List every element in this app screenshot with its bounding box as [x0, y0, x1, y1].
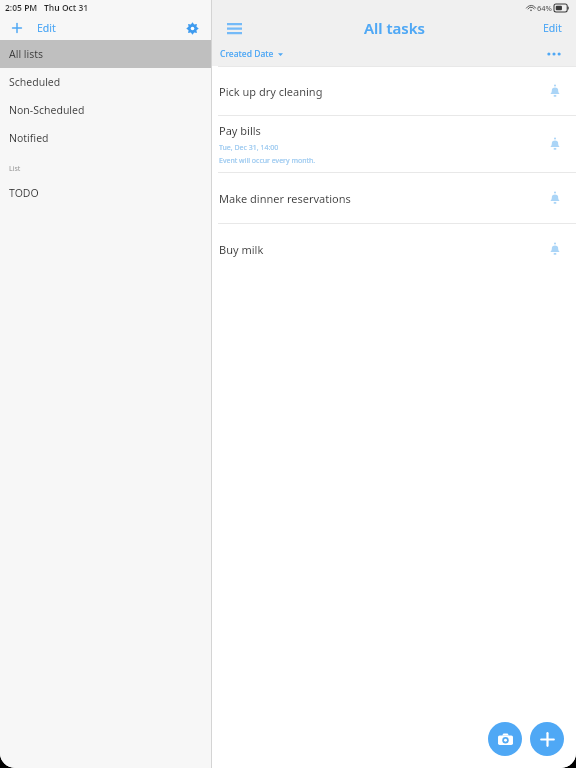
staticText: Scheduled	[9, 75, 61, 89]
staticText: TODO	[9, 186, 39, 200]
staticText: Notified	[9, 131, 49, 145]
button[interactable]: Scheduled	[0, 68, 211, 96]
staticText: 64%	[537, 3, 552, 13]
button[interactable]: More options	[543, 43, 565, 65]
button[interactable]: Take photo	[488, 722, 522, 756]
button[interactable]: Created Date	[218, 44, 285, 64]
button[interactable]: Settings	[181, 17, 203, 39]
button[interactable]: Pay bills	[212, 116, 576, 172]
staticText: Make dinner reservations	[219, 191, 351, 206]
staticText: Buy milk	[219, 242, 264, 257]
button[interactable]: Add task	[530, 722, 564, 756]
button[interactable]: Reminder	[543, 186, 567, 210]
staticText: Tue, Dec 31, 14:00	[219, 143, 279, 153]
staticText: Thu Oct 31	[44, 2, 89, 14]
button[interactable]: Reminder	[543, 79, 567, 103]
staticText: Pay bills	[219, 123, 261, 138]
staticText: Created Date	[220, 48, 274, 60]
button[interactable]: Edit	[34, 17, 59, 39]
button[interactable]: TODO	[0, 179, 211, 207]
staticText: All tasks	[364, 18, 425, 38]
button[interactable]: Reminder	[543, 237, 567, 261]
button[interactable]: Reminder	[543, 132, 567, 156]
staticText: Event will occur every month.	[219, 156, 316, 166]
staticText: Pick up dry cleaning	[219, 84, 323, 99]
button[interactable]: Menu	[221, 15, 247, 41]
staticText: All lists	[9, 47, 44, 61]
button[interactable]: Buy milk	[212, 224, 576, 274]
staticText: List	[9, 164, 21, 174]
button[interactable]: Make dinner reservations	[212, 173, 576, 223]
button[interactable]: Pick up dry cleaning	[212, 67, 576, 115]
staticText: Edit	[37, 21, 56, 35]
staticText: Non-Scheduled	[9, 103, 85, 117]
staticText: 2:05 PM	[5, 2, 38, 14]
button[interactable]: Add list	[6, 17, 28, 39]
staticText: Edit	[543, 21, 562, 35]
button[interactable]: Edit	[540, 17, 565, 39]
button[interactable]: All lists	[0, 40, 211, 68]
button[interactable]: Non-Scheduled	[0, 96, 211, 124]
button[interactable]: Notified	[0, 124, 211, 152]
